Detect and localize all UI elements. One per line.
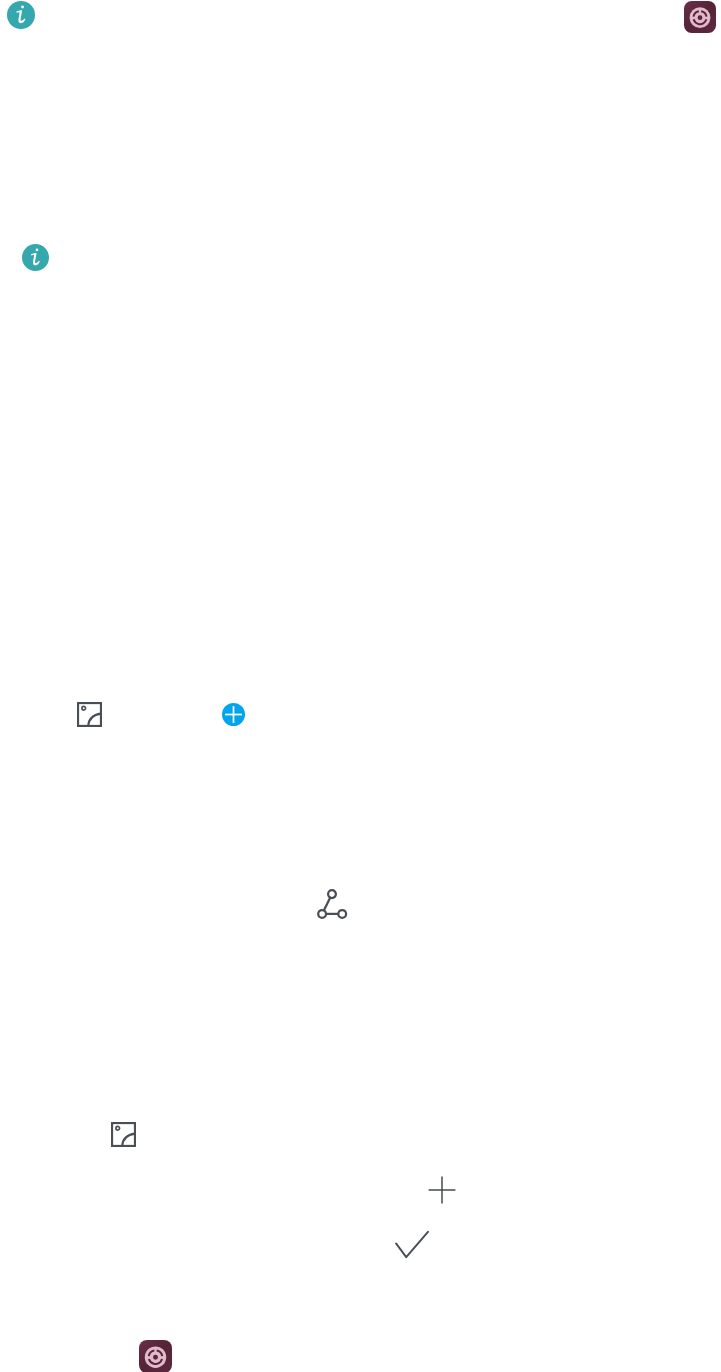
button[interactable]: Image — [77, 702, 102, 727]
button[interactable]: Open app — [139, 1340, 172, 1372]
button[interactable]: Image — [111, 1122, 136, 1147]
button[interactable]: Information — [7, 1, 35, 29]
button[interactable]: Information — [22, 244, 49, 271]
button[interactable]: Share — [317, 889, 347, 919]
button[interactable]: Open app — [684, 1, 716, 33]
button[interactable]: Done — [395, 1231, 429, 1258]
button[interactable]: Add — [428, 1176, 456, 1204]
button[interactable]: Add — [222, 703, 245, 726]
